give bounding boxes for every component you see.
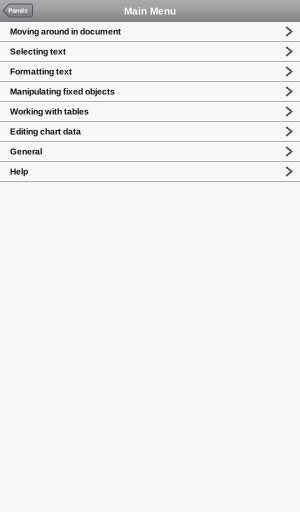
button[interactable]: Editing chart data [0,122,300,142]
button[interactable]: Selecting text [0,42,300,62]
staticText: General [10,147,42,156]
staticText: Panels [8,7,27,14]
button[interactable]: Working with tables [0,102,300,122]
staticText: Moving around in document [10,27,121,36]
staticText: Main Menu [124,5,176,17]
button[interactable]: Manipulating fixed objects [0,82,300,102]
button[interactable]: General [0,142,300,162]
button[interactable]: Panels [3,4,32,17]
staticText: Manipulating fixed objects [10,87,115,96]
button[interactable]: Formatting text [0,62,300,82]
staticText: Selecting text [10,47,66,56]
staticText: Working with tables [10,107,89,116]
button[interactable]: Help [0,162,300,182]
button[interactable]: Moving around in document [0,22,300,42]
staticText: Formatting text [10,67,72,76]
staticText: Help [10,167,28,176]
staticText: Editing chart data [10,127,81,136]
